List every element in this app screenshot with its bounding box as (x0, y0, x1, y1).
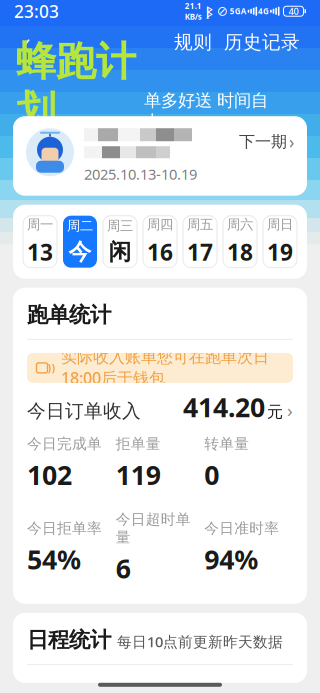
staticText: 周三 (107, 218, 133, 234)
button[interactable]: Back (6, 25, 46, 59)
staticText: 周二 (67, 218, 93, 234)
staticText: ᛒ (202, 3, 217, 20)
staticText: 规则 (174, 31, 212, 54)
staticText: 历史记录 (224, 31, 300, 54)
staticText: 跑单统计 (27, 302, 111, 328)
staticText: 0 (204, 457, 219, 492)
staticText: 6 (116, 550, 131, 586)
staticText: ⊘ (217, 4, 228, 19)
staticText: 今日超时单量 (116, 510, 191, 546)
staticText: 今 (68, 238, 91, 266)
staticText: ‹ (21, 19, 30, 65)
staticText: 102 (27, 457, 72, 492)
staticText: 蜂跑计划 (16, 37, 136, 135)
button[interactable]: 周四 (143, 216, 177, 268)
staticText: 周五 (187, 216, 213, 233)
button[interactable]: 周六 (223, 216, 257, 268)
staticText: )) (47, 361, 55, 375)
button[interactable]: 今日订单收入 (13, 387, 307, 427)
staticText: 今日完成单 (27, 435, 102, 453)
staticText: 周四 (147, 216, 173, 233)
button[interactable]: 规则 (168, 25, 218, 59)
staticText: 4G (258, 6, 269, 16)
staticText: 40 (288, 5, 298, 17)
staticText: 119 (116, 457, 161, 492)
staticText: 17 (187, 237, 213, 267)
staticText: 13 (27, 237, 53, 267)
staticText: 21.1 (185, 1, 202, 11)
button[interactable]: 2025.10.13-10.19 (13, 116, 307, 196)
staticText: 元 (267, 402, 283, 422)
staticText: 16 (147, 237, 173, 267)
staticText: 19 (267, 237, 293, 267)
button[interactable]: 周五 (183, 216, 217, 268)
staticText: 23:03 (14, 0, 59, 23)
staticText: 转单量 (204, 435, 249, 453)
staticText: 闲 (108, 238, 131, 266)
staticText: 每日10点前更新昨天数据 (117, 632, 283, 651)
staticText: › (289, 130, 294, 153)
staticText: 2025.10.13-10.19 (84, 164, 197, 184)
staticText: 下一期 (239, 132, 287, 152)
staticText: 5GA (228, 6, 247, 16)
button[interactable]: 历史记录 (218, 25, 306, 59)
button[interactable]: 周日 (263, 216, 297, 268)
staticText: 实际收入账单您可在跑单次日18:00后于钱包 (61, 347, 269, 388)
button[interactable]: 周三 (103, 216, 137, 268)
staticText: 周日 (267, 216, 293, 233)
staticText: 414.20 (183, 389, 265, 425)
button[interactable]: 周二 (63, 216, 97, 268)
staticText: 拒单量 (116, 435, 161, 453)
staticText: 18 (227, 237, 253, 267)
button[interactable]: 周一 (23, 216, 57, 268)
staticText: 54% (27, 541, 81, 577)
staticText: › (287, 398, 293, 422)
staticText: 周六 (227, 216, 253, 233)
staticText: 今日拒单率 (27, 519, 102, 537)
staticText: 单多好送 时间自由 (144, 90, 268, 132)
staticText: KB/s (185, 11, 202, 22)
staticText: 周一 (27, 216, 53, 233)
staticText: 94% (204, 541, 258, 577)
staticText: 今日订单收入 (27, 400, 141, 422)
staticText: 日程统计 (27, 627, 111, 653)
staticText: 今日准时率 (204, 519, 279, 537)
